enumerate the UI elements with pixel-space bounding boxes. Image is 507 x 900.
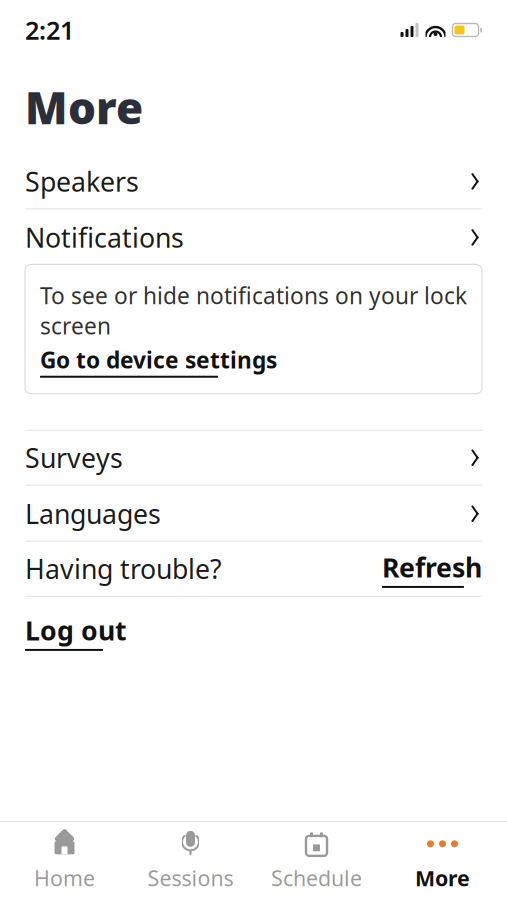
button[interactable]: Schedule [253, 824, 379, 898]
staticText: Home [34, 864, 95, 892]
staticText: More [415, 864, 470, 892]
button[interactable]: Sessions [127, 824, 253, 898]
button[interactable]: Go to device settings [40, 345, 277, 378]
button[interactable]: Log out [25, 605, 482, 659]
staticText: Surveys [25, 440, 123, 475]
staticText: To see or hide notifications on your loc… [40, 280, 467, 341]
button[interactable]: Home [1, 824, 127, 898]
staticText: Schedule [271, 864, 362, 892]
button[interactable]: More [379, 824, 505, 898]
staticText: Go to device settings [40, 345, 277, 375]
staticText: Sessions [147, 864, 233, 892]
staticText: Refresh [382, 549, 482, 585]
button[interactable]: Speakers [25, 154, 482, 208]
button[interactable]: Languages [25, 487, 482, 541]
button[interactable]: Notifications [25, 210, 482, 264]
staticText: More [25, 78, 143, 136]
staticText: Speakers [25, 164, 139, 199]
staticText: 2:21 [25, 13, 74, 47]
staticText: Having trouble? [25, 551, 222, 586]
staticText: Notifications [25, 220, 184, 255]
button[interactable]: Having trouble? [25, 542, 482, 596]
staticText: Languages [25, 496, 161, 531]
staticText: Log out [25, 612, 127, 648]
button[interactable]: Surveys [25, 431, 482, 485]
